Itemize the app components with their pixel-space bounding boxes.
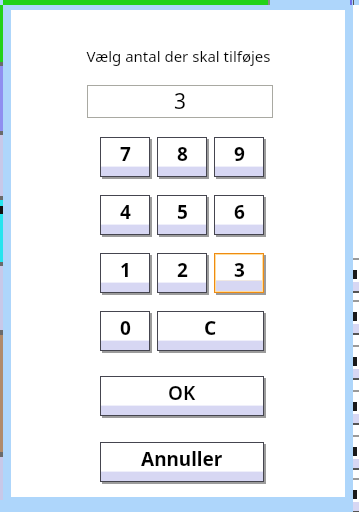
staticText: 1 bbox=[120, 257, 131, 283]
staticText: Vælg antal der skal tilføjes bbox=[86, 46, 271, 66]
button[interactable]: 6 bbox=[214, 195, 266, 237]
staticText: Annuller bbox=[141, 446, 223, 472]
button[interactable]: 3 bbox=[214, 253, 266, 295]
button[interactable]: 1 bbox=[100, 253, 152, 295]
staticText: 0 bbox=[120, 315, 131, 341]
button[interactable]: 9 bbox=[214, 137, 266, 179]
staticText: 7 bbox=[120, 141, 131, 167]
staticText: C bbox=[204, 315, 217, 341]
button[interactable]: C bbox=[157, 311, 266, 353]
button[interactable]: Annuller bbox=[100, 442, 266, 484]
staticText: 2 bbox=[177, 257, 188, 283]
button[interactable]: 8 bbox=[157, 137, 209, 179]
button[interactable]: OK bbox=[100, 376, 266, 418]
staticText: 5 bbox=[177, 199, 188, 225]
staticText: 4 bbox=[120, 199, 131, 225]
staticText: 9 bbox=[234, 141, 245, 167]
staticText: OK bbox=[168, 380, 196, 406]
button[interactable]: 5 bbox=[157, 195, 209, 237]
button[interactable]: 7 bbox=[100, 137, 152, 179]
staticText: 3 bbox=[174, 87, 187, 116]
staticText: 8 bbox=[177, 141, 188, 167]
staticText: 6 bbox=[234, 199, 245, 225]
button[interactable]: 3 bbox=[87, 85, 273, 118]
button[interactable]: 2 bbox=[157, 253, 209, 295]
staticText: 3 bbox=[234, 257, 245, 283]
button[interactable]: 4 bbox=[100, 195, 152, 237]
button[interactable]: 0 bbox=[100, 311, 152, 353]
